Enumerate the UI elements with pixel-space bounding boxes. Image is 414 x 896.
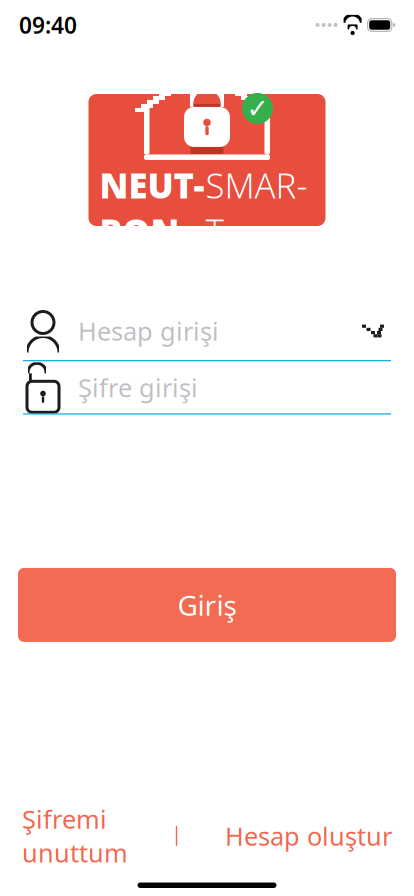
staticText: 09:40 [19,10,77,40]
staticText: ✓ [246,93,268,124]
button[interactable]: Şifremi unuttum [22,795,128,876]
staticText: SMART [205,162,307,254]
button[interactable]: Hesap oluştur [225,812,392,860]
staticText: Şifremi unuttum [22,802,128,869]
button[interactable]: Giriş [18,568,396,642]
staticText: Hesap girişi [78,314,219,348]
button[interactable]: Şifre girişi [0,361,414,415]
staticText: Hesap oluştur [225,819,392,853]
button[interactable]: Hesap girişi [0,302,414,361]
staticText: Şifre girişi [78,370,198,404]
staticText: NEUTRON [99,162,204,254]
staticText: Giriş [177,586,236,623]
